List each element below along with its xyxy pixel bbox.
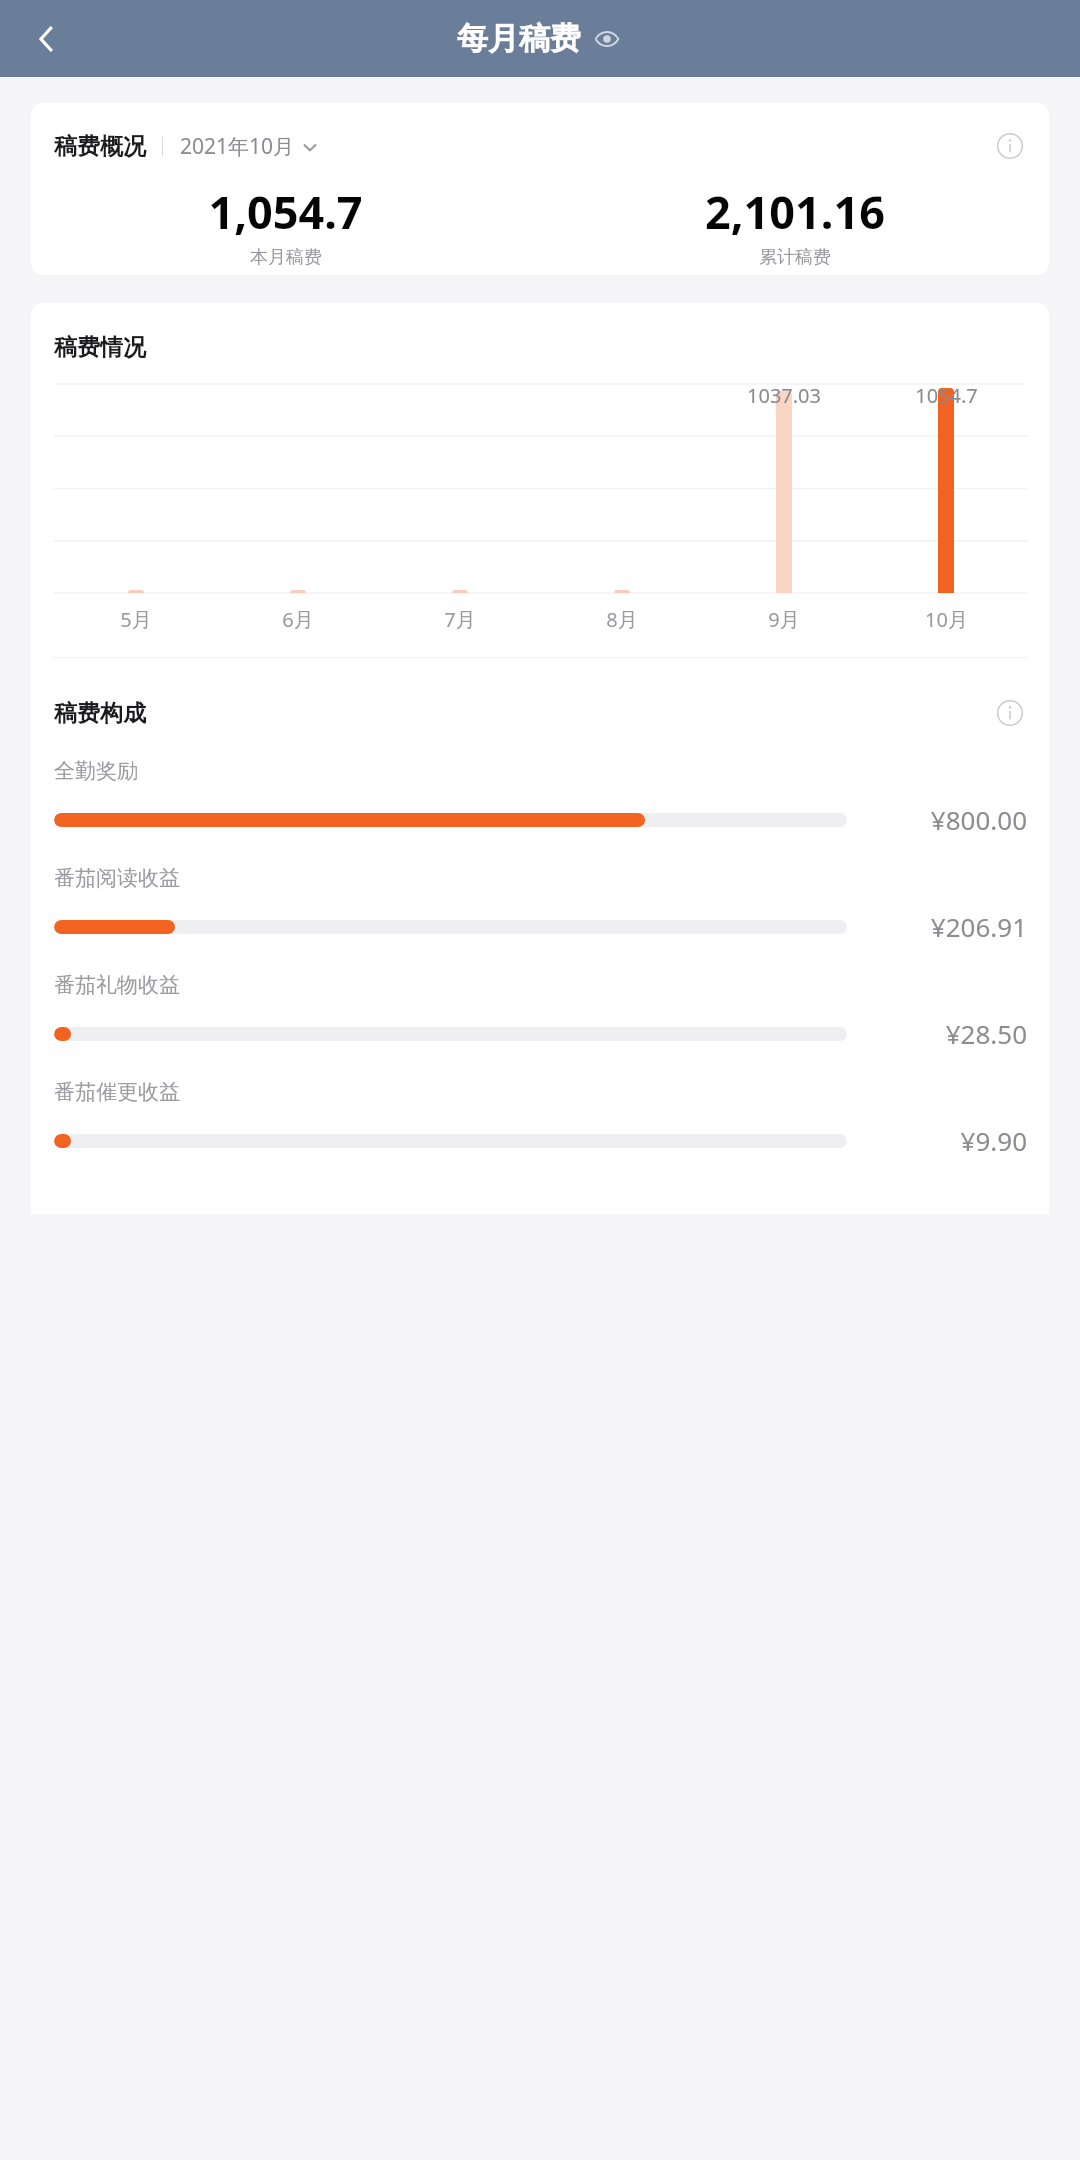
staticText: 稿费情况 bbox=[54, 333, 146, 362]
staticText: 本月稿费 bbox=[250, 246, 322, 269]
staticText: 1037.03 bbox=[747, 382, 821, 409]
staticText: 稿费构成 bbox=[54, 699, 146, 728]
staticText: 7月 bbox=[444, 606, 476, 633]
button[interactable]: 番茄礼物收益 bbox=[31, 960, 1049, 1067]
staticText: 每月稿费 bbox=[457, 19, 581, 58]
staticText: 1054.7 bbox=[915, 382, 978, 409]
staticText: ¥206.91 bbox=[930, 909, 1027, 944]
button[interactable]: 番茄催更收益 bbox=[31, 1067, 1049, 1174]
button[interactable]: Back bbox=[18, 10, 76, 68]
staticText: 稿费概况 bbox=[54, 132, 146, 161]
button[interactable]: 番茄阅读收益 bbox=[31, 853, 1049, 960]
staticText: 番茄催更收益 bbox=[54, 1079, 180, 1105]
button[interactable]: Toggle visibility bbox=[590, 22, 624, 56]
staticText: 番茄阅读收益 bbox=[54, 865, 180, 891]
staticText: 2021年10月 bbox=[180, 132, 295, 161]
staticText: 累计稿费 bbox=[759, 246, 831, 269]
button[interactable]: Info about composition bbox=[993, 696, 1027, 730]
staticText: 全勤奖励 bbox=[54, 758, 138, 784]
button[interactable]: Info about overview bbox=[993, 129, 1027, 163]
button[interactable]: 2021年10月 bbox=[180, 132, 318, 161]
staticText: ¥9.90 bbox=[960, 1123, 1027, 1158]
staticText: 番茄礼物收益 bbox=[54, 972, 180, 998]
staticText: 5月 bbox=[120, 606, 152, 633]
staticText: 9月 bbox=[768, 606, 800, 633]
staticText: ¥28.50 bbox=[945, 1016, 1027, 1051]
staticText: 6月 bbox=[282, 606, 314, 633]
staticText: ¥800.00 bbox=[930, 802, 1027, 837]
staticText: 8月 bbox=[606, 606, 638, 633]
staticText: 1,054.7 bbox=[208, 181, 363, 242]
staticText: 10月 bbox=[925, 606, 968, 633]
button[interactable]: 全勤奖励 bbox=[31, 746, 1049, 853]
staticText: 2,101.16 bbox=[705, 181, 885, 242]
